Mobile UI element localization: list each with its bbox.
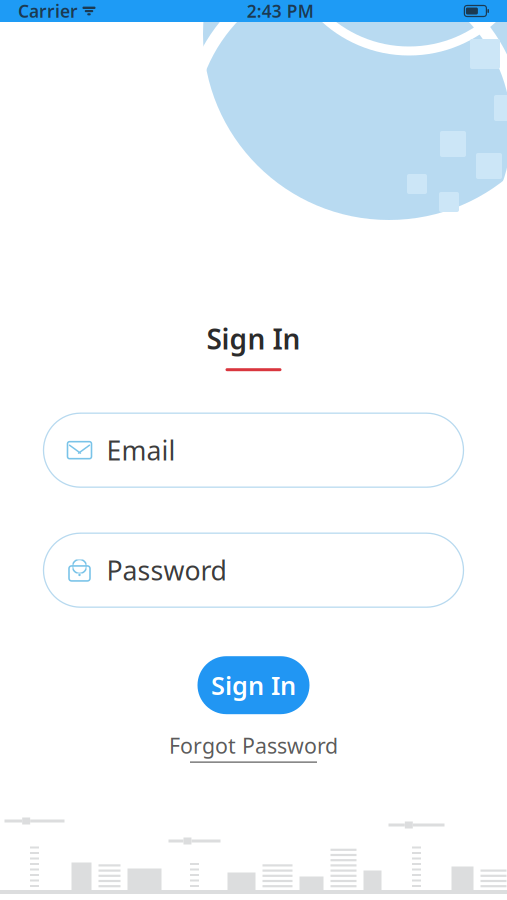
staticText: Forgot Password: [169, 731, 338, 759]
button[interactable]: Password: [43, 533, 463, 607]
staticText: Password: [106, 552, 226, 588]
button[interactable]: Forgot Password: [169, 731, 338, 763]
staticText: Sign In: [211, 668, 296, 702]
staticText: Carrier: [18, 0, 78, 22]
button[interactable]: Email: [43, 413, 463, 487]
button[interactable]: Sign In: [197, 656, 309, 714]
staticText: 2:43 PM: [247, 0, 314, 22]
staticText: Sign In: [206, 320, 300, 357]
staticText: Email: [106, 432, 175, 468]
